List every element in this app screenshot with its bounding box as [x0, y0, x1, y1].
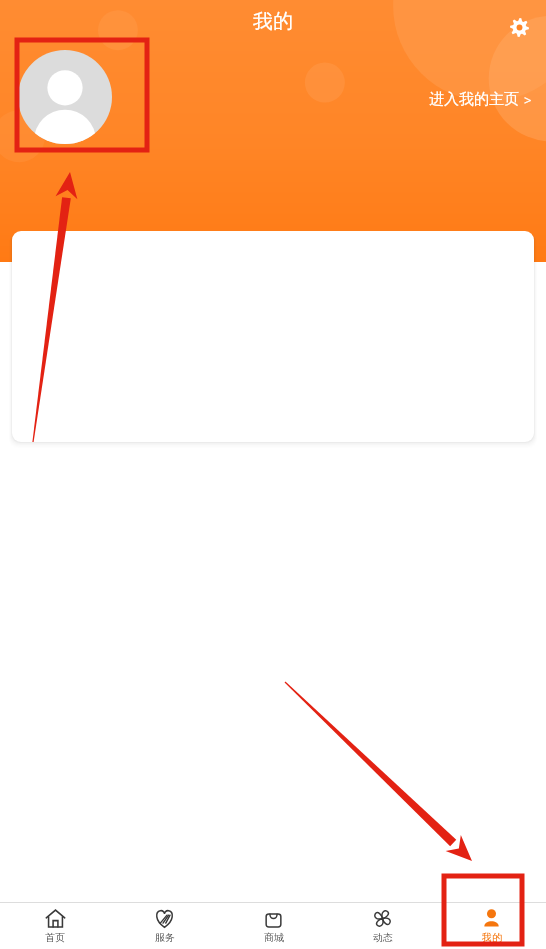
button[interactable]: 首页	[0, 903, 110, 949]
staticText: 服务	[155, 931, 175, 944]
staticText: 商城	[264, 931, 284, 944]
button[interactable]: 服务	[110, 903, 219, 949]
button[interactable]: 我的	[437, 903, 546, 949]
button[interactable]: Settings	[502, 10, 536, 44]
button[interactable]: 动态	[328, 903, 437, 949]
staticText: 我的	[253, 9, 293, 34]
button[interactable]: Profile avatar	[18, 50, 112, 144]
button[interactable]: 商城	[219, 903, 328, 949]
staticText: >	[524, 91, 532, 109]
staticText: 动态	[373, 931, 393, 944]
button[interactable]: 进入我的主页	[429, 90, 532, 109]
staticText: 进入我的主页	[429, 90, 519, 109]
staticText: 我的	[482, 931, 502, 944]
button[interactable]	[12, 231, 534, 442]
staticText: 首页	[45, 931, 65, 944]
